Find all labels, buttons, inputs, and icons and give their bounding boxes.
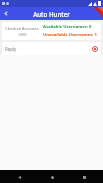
staticText: 0/50: [18, 32, 27, 37]
staticText: Auto Hunter: [33, 10, 70, 18]
staticText: Reply: [5, 46, 17, 52]
button[interactable]: Back: [13, 171, 25, 183]
button[interactable]: Recents: [78, 171, 90, 183]
button[interactable]: Unavailable: [91, 45, 98, 52]
button[interactable]: Reply: [2, 42, 101, 55]
button[interactable]: Back: [1, 8, 12, 19]
button[interactable]: Home: [46, 171, 58, 183]
button[interactable]: Checked Accounts: [2, 22, 101, 40]
staticText: Unavailable Usernames: 1: [43, 32, 98, 38]
staticText: Checked Accounts: [5, 26, 39, 31]
staticText: Available Usernames: 0: [43, 24, 92, 30]
